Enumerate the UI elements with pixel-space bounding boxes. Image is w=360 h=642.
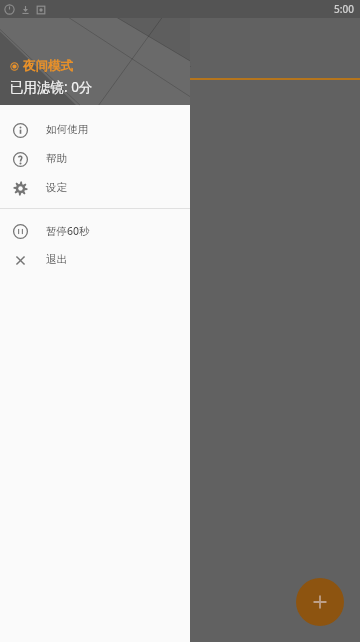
staticText: 退出 bbox=[46, 253, 67, 266]
staticText: 5:00 bbox=[334, 2, 354, 16]
staticText: 如何使用 bbox=[46, 123, 88, 136]
staticText: 已用滤镜: 0分 bbox=[10, 78, 93, 96]
button[interactable]: 设定 bbox=[0, 173, 190, 202]
button[interactable]: 帮助 bbox=[0, 144, 190, 173]
button[interactable]: 如何使用 bbox=[0, 115, 190, 144]
button[interactable]: Add bbox=[296, 578, 344, 626]
button[interactable]: 日程 bbox=[0, 44, 360, 80]
staticText: 暂停60秒 bbox=[46, 224, 90, 238]
staticText: 日程 bbox=[169, 55, 191, 69]
button[interactable]: 暂停60秒 bbox=[0, 216, 190, 245]
button[interactable]: 退出 bbox=[0, 245, 190, 274]
staticText: 设定 bbox=[46, 181, 67, 194]
staticText: 夜间模式 bbox=[23, 58, 73, 74]
staticText: 帮助 bbox=[46, 152, 67, 165]
